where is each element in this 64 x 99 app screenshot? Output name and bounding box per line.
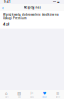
button[interactable]: ⚐ (26, 90, 38, 99)
staticText: ♥ (43, 91, 47, 96)
staticText: ⚐ (30, 91, 34, 96)
staticText: 9:41 (4, 0, 11, 4)
staticText: Wesprzyj nas (23, 6, 40, 9)
button[interactable]: ⌂ (0, 90, 13, 99)
staticText: ⌂ (5, 91, 8, 96)
button[interactable]: ♥ (38, 90, 51, 99)
staticText: ‹ (2, 4, 4, 11)
staticText: Start (5, 96, 8, 98)
staticText: Lista (18, 96, 21, 98)
staticText: ≡ (56, 91, 59, 96)
staticText: Wpisz kwotę dobrowolnie środków na Usług… (3, 13, 59, 20)
staticText: Wspar (42, 96, 47, 98)
staticText: ▤ (17, 91, 21, 96)
button[interactable]: ▤ (13, 90, 26, 99)
staticText: ••• ▬ (53, 0, 60, 4)
staticText: Więcej (56, 96, 60, 98)
staticText: 4 zł (3, 21, 9, 27)
button[interactable]: ≡ (51, 90, 64, 99)
staticText: Mapa (30, 96, 34, 98)
button[interactable]: Back (0, 4, 6, 11)
